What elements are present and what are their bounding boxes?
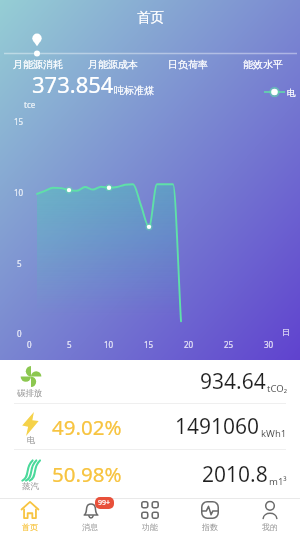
staticText: 15 xyxy=(14,116,24,127)
other: 功能 xyxy=(141,501,159,519)
staticText: 20 xyxy=(184,339,194,350)
other: 首页 xyxy=(21,501,39,519)
staticText: 首页 xyxy=(22,522,38,532)
staticText: 吨标准煤 xyxy=(114,84,154,97)
staticText: 0 xyxy=(27,339,32,350)
staticText: 功能 xyxy=(142,522,158,532)
button[interactable]: 我的 xyxy=(240,499,300,533)
staticText: 蒸汽 xyxy=(22,481,39,492)
staticText: 10 xyxy=(104,339,114,350)
staticText: 99+ xyxy=(98,498,111,508)
other: 我的 xyxy=(261,501,279,519)
staticText: kWh1 xyxy=(261,427,287,440)
button[interactable]: 指数 xyxy=(180,499,240,533)
button[interactable]: 能效水平 xyxy=(225,57,300,71)
staticText: tCO₂ xyxy=(267,382,287,395)
other: 消息 xyxy=(82,501,100,519)
staticText: 电 xyxy=(287,87,296,98)
button[interactable]: 月能源消耗 xyxy=(0,57,75,71)
button[interactable]: 电 xyxy=(0,404,300,449)
staticText: 50.98% xyxy=(52,460,122,488)
button[interactable]: 消息 xyxy=(60,499,120,533)
staticText: m1³ xyxy=(269,475,287,488)
staticText: 2010.8 xyxy=(202,460,268,489)
staticText: 1491060 xyxy=(175,412,260,441)
staticText: 49.02% xyxy=(52,413,122,441)
staticText: 日 xyxy=(282,327,290,337)
other: 指数 xyxy=(201,501,219,519)
button[interactable]: 月能源成本 xyxy=(75,57,150,71)
button[interactable]: 日负荷率 xyxy=(150,57,225,71)
staticText: 能效水平 xyxy=(243,58,283,71)
staticText: 373.854 xyxy=(32,69,114,99)
staticText: 0 xyxy=(17,328,22,339)
staticText: 指数 xyxy=(202,522,218,532)
staticText: 934.64 xyxy=(200,367,266,396)
staticText: 25 xyxy=(224,339,234,350)
staticText: 10 xyxy=(14,187,24,198)
staticText: 我的 xyxy=(262,522,278,532)
staticText: 电 xyxy=(27,435,36,446)
button[interactable]: 碳排放 xyxy=(0,360,300,403)
staticText: 月能源消耗 xyxy=(13,58,63,71)
staticText: 15 xyxy=(144,339,154,350)
button[interactable]: 功能 xyxy=(120,499,180,533)
staticText: 日负荷率 xyxy=(168,58,208,71)
button[interactable]: 蒸汽 xyxy=(0,450,300,498)
button[interactable]: 首页 xyxy=(0,499,60,533)
staticText: 月能源成本 xyxy=(88,58,138,71)
staticText: tce xyxy=(24,99,36,110)
staticText: 消息 xyxy=(82,522,98,532)
staticText: 首页 xyxy=(137,9,164,26)
staticText: 碳排放 xyxy=(17,388,43,399)
staticText: 30 xyxy=(264,339,274,350)
staticText: 5 xyxy=(67,339,72,350)
staticText: 5 xyxy=(17,258,22,269)
